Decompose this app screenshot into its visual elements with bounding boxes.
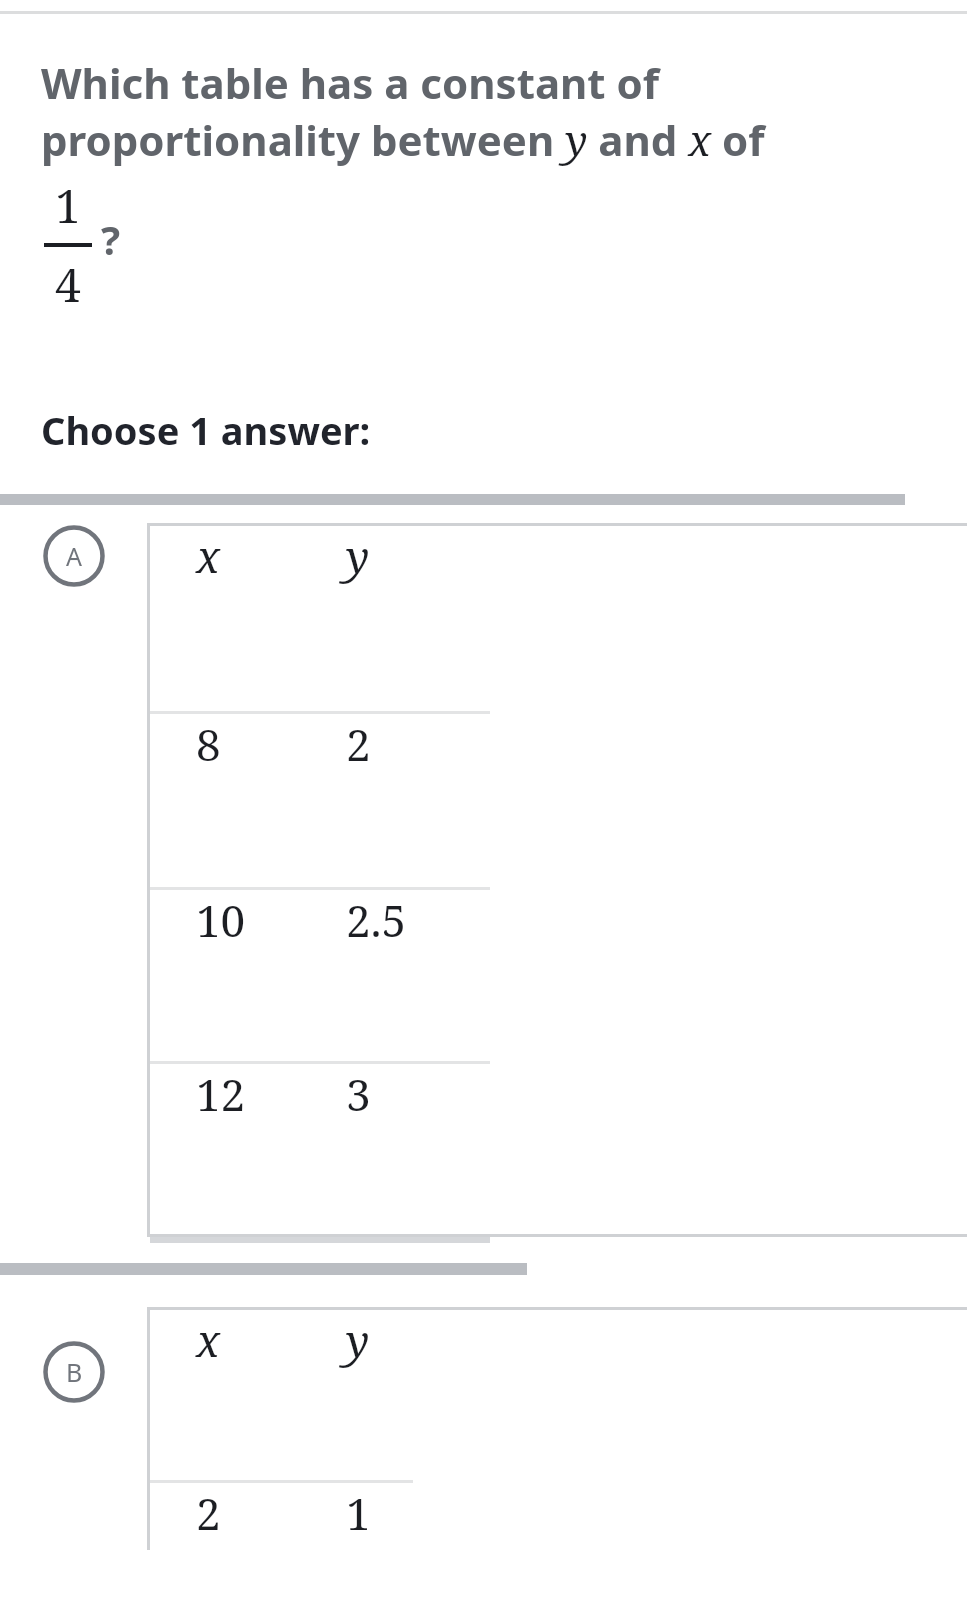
staticText: proportionality between y and x of xyxy=(41,111,765,168)
staticText: 8 xyxy=(196,714,221,774)
staticText: x xyxy=(196,526,221,586)
staticText: 1 xyxy=(346,1483,371,1543)
staticText: 2.5 xyxy=(346,890,407,950)
button[interactable]: Option B xyxy=(0,1307,967,1550)
staticText: x xyxy=(196,1310,221,1370)
button[interactable]: Option A xyxy=(0,523,967,1234)
staticText: 4 xyxy=(55,253,81,316)
button[interactable]: Option B xyxy=(43,1341,105,1403)
staticText: Which table has a constant of xyxy=(41,54,659,111)
staticText: y xyxy=(346,1310,370,1370)
staticText: B xyxy=(66,1355,83,1389)
staticText: 1 xyxy=(55,174,81,237)
staticText: y xyxy=(346,526,370,586)
staticText: 3 xyxy=(346,1064,371,1124)
staticText: A xyxy=(66,539,82,573)
button[interactable]: Option A xyxy=(43,525,105,587)
staticText: 2 xyxy=(196,1483,221,1543)
staticText: 12 xyxy=(196,1064,246,1124)
staticText: Choose 1 answer: xyxy=(41,404,371,456)
staticText: ? xyxy=(101,212,121,266)
staticText: 2 xyxy=(346,714,371,774)
staticText: 10 xyxy=(196,890,246,950)
